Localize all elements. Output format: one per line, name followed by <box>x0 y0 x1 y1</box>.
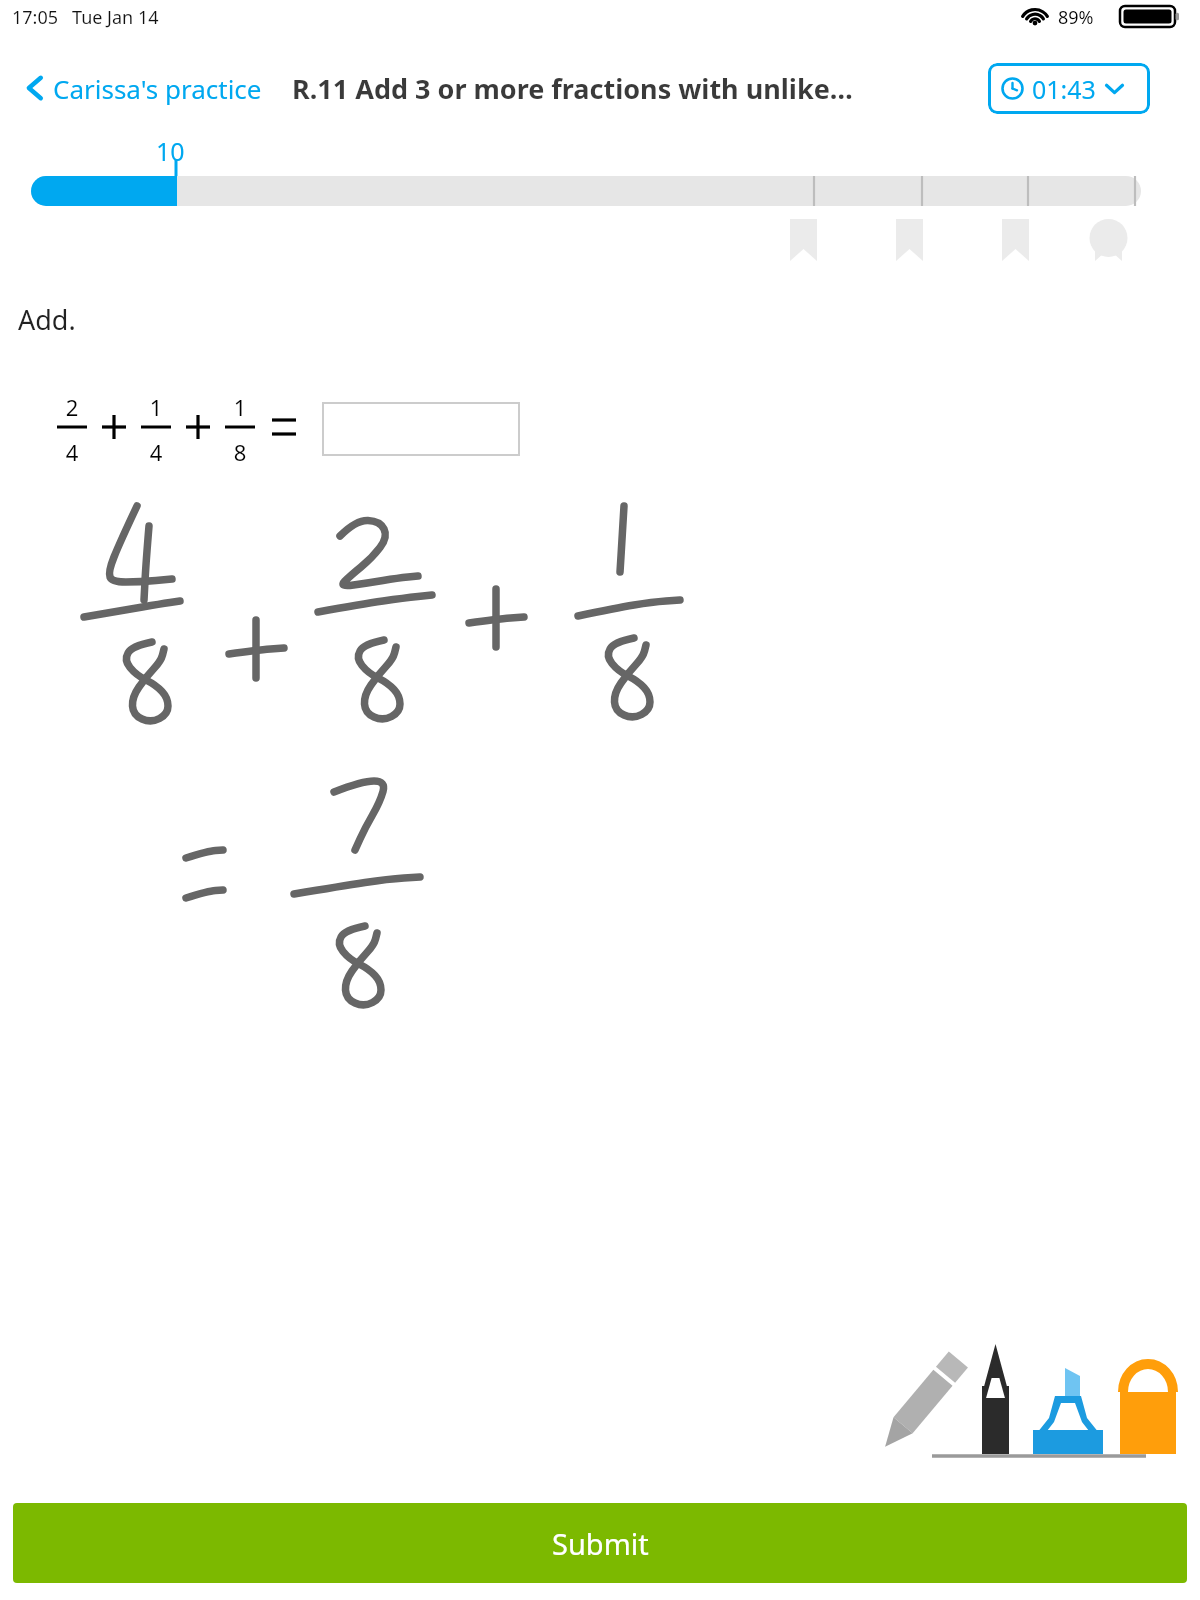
staticText: 1 <box>147 392 165 422</box>
staticText: 8 <box>231 437 249 467</box>
staticText: Submit <box>552 1524 649 1563</box>
staticText: Carissa's practice <box>53 71 262 106</box>
staticText: 1 <box>231 392 249 422</box>
button[interactable]: Submit <box>13 1503 1187 1583</box>
staticText: 4 <box>63 437 81 467</box>
staticText: 89% <box>1058 5 1094 30</box>
staticText: 10 <box>156 134 185 168</box>
button[interactable]: Drawing tools <box>870 1340 1152 1466</box>
button[interactable]: Carissa's practice <box>22 62 266 114</box>
button[interactable]: 01:43 <box>988 63 1150 114</box>
staticText: 17:05 Tue Jan 14 <box>12 5 159 30</box>
staticText: 2 <box>63 392 81 422</box>
button[interactable]: Answer field <box>322 402 520 456</box>
staticText: 4 <box>147 437 165 467</box>
staticText: R.11 Add 3 or more fractions with unlike… <box>292 70 853 107</box>
staticText: 01:43 <box>1032 72 1096 106</box>
staticText: Add. <box>18 301 76 338</box>
